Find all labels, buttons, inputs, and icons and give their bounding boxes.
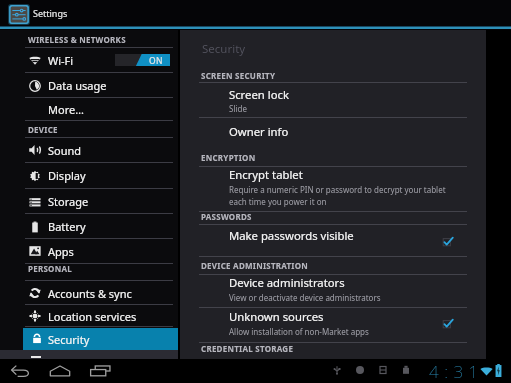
staticText: ON: [149, 55, 163, 67]
button[interactable]: Make passwords visible: [229, 228, 354, 243]
button[interactable]: Storage: [0, 189, 178, 214]
staticText: CREDENTIAL STORAGE: [201, 343, 294, 354]
staticText: each time you power it on: [229, 196, 327, 207]
staticText: Accounts & sync: [48, 286, 132, 301]
staticText: Location services: [48, 309, 137, 324]
staticText: Settings: [33, 7, 68, 19]
staticText: PERSONAL: [28, 263, 72, 274]
staticText: Wi-Fi: [48, 53, 74, 68]
button[interactable]: Accounts & sync: [0, 281, 178, 305]
staticText: PASSWORDS: [201, 211, 252, 222]
button[interactable]: Screen lock: [229, 87, 289, 102]
button[interactable]: Home: [49, 365, 71, 377]
button[interactable]: Device administrators: [229, 275, 345, 290]
staticText: Storage: [48, 194, 89, 209]
button[interactable]: Enabled: [443, 319, 453, 329]
staticText: Apps: [48, 244, 74, 259]
staticText: DEVICE: [28, 124, 58, 135]
button[interactable]: Back: [11, 365, 30, 377]
staticText: Unknown sources: [229, 309, 324, 324]
staticText: ENCRYPTION: [201, 152, 256, 163]
staticText: Make passwords visible: [229, 228, 354, 243]
button[interactable]: Data usage: [0, 73, 178, 98]
staticText: Sound: [48, 143, 82, 158]
button[interactable]: Sound: [0, 138, 178, 163]
staticText: WIRELESS & NETWORKS: [28, 34, 126, 45]
staticText: Encrypt tablet: [229, 167, 303, 182]
button[interactable]: Location services: [0, 305, 178, 327]
button[interactable]: Display: [0, 163, 178, 188]
button[interactable]: Settings: [8, 4, 30, 25]
staticText: View or deactivate device administrators: [229, 292, 381, 303]
button[interactable]: Apps: [0, 239, 178, 264]
staticText: Slide: [229, 103, 247, 114]
staticText: Battery: [48, 219, 86, 234]
staticText: SCREEN SECURITY: [201, 70, 276, 81]
button[interactable]: Owner info: [229, 124, 289, 139]
staticText: Security: [202, 41, 246, 57]
button[interactable]: Battery: [0, 214, 178, 239]
staticText: Screen lock: [229, 87, 289, 102]
button[interactable]: Recent apps: [90, 365, 111, 377]
button[interactable]: More…: [0, 98, 178, 121]
button[interactable]: Security: [23, 328, 178, 350]
staticText: Display: [48, 168, 86, 183]
button[interactable]: Wi-Fi: [0, 48, 178, 73]
button[interactable]: Wi-Fi on: [115, 54, 170, 66]
button[interactable]: Encrypt tablet: [229, 167, 303, 182]
staticText: Allow installation of non-Market apps: [229, 326, 369, 337]
staticText: Device administrators: [229, 275, 345, 290]
staticText: Security: [48, 332, 90, 347]
staticText: Data usage: [48, 78, 107, 93]
staticText: Owner info: [229, 124, 289, 139]
staticText: 4:31: [429, 360, 484, 383]
staticText: More…: [48, 102, 84, 117]
button[interactable]: Enabled: [443, 237, 453, 247]
staticText: DEVICE ADMINISTRATION: [201, 260, 309, 271]
staticText: Require a numeric PIN or password to dec…: [229, 184, 446, 195]
button[interactable]: Unknown sources: [229, 309, 324, 324]
